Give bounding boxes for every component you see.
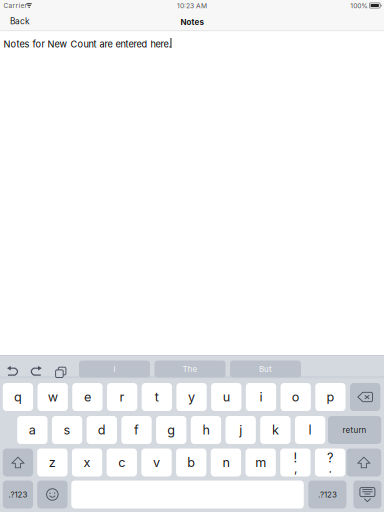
button[interactable]: k: [260, 416, 290, 444]
button[interactable]: Emoji: [37, 480, 67, 508]
staticText: e: [84, 389, 91, 405]
staticText: 100%: [350, 2, 368, 10]
staticText: s: [64, 422, 71, 438]
button[interactable]: [71, 480, 304, 508]
staticText: ?: [327, 450, 333, 466]
button[interactable]: v: [141, 448, 172, 476]
staticText: p: [326, 389, 334, 405]
button[interactable]: !: [280, 448, 310, 476]
button[interactable]: x: [72, 448, 102, 476]
staticText: Carrier: [3, 2, 26, 9]
button[interactable]: y: [176, 383, 207, 411]
button[interactable]: return: [328, 416, 381, 444]
button[interactable]: l: [295, 416, 325, 444]
button[interactable]: z: [37, 448, 67, 476]
button[interactable]: Hide Keyboard: [353, 480, 381, 508]
button[interactable]: j: [225, 416, 256, 444]
button[interactable]: Redo: [25, 362, 47, 380]
staticText: k: [272, 422, 279, 438]
staticText: The: [182, 364, 197, 374]
staticText: 10:23 AM: [177, 2, 207, 10]
button[interactable]: But: [230, 360, 301, 377]
staticText: c: [118, 455, 125, 470]
button[interactable]: Back: [0, 13, 40, 30]
staticText: f: [134, 422, 139, 438]
button[interactable]: Delete: [350, 383, 380, 411]
staticText: q: [14, 389, 22, 405]
staticText: Back: [10, 16, 30, 26]
button[interactable]: I: [79, 360, 150, 377]
button[interactable]: Shift: [3, 448, 33, 476]
button[interactable]: o: [281, 383, 311, 411]
staticText: v: [153, 455, 160, 470]
staticText: i: [259, 389, 262, 405]
button[interactable]: e: [72, 383, 102, 411]
button[interactable]: b: [176, 448, 206, 476]
staticText: But: [259, 364, 272, 374]
button[interactable]: .?123: [3, 480, 33, 508]
staticText: y: [188, 389, 195, 405]
button[interactable]: d: [87, 416, 117, 444]
staticText: g: [167, 422, 175, 438]
staticText: o: [292, 389, 300, 405]
button[interactable]: q: [3, 383, 33, 411]
button[interactable]: s: [52, 416, 82, 444]
button[interactable]: i: [246, 383, 276, 411]
button[interactable]: h: [191, 416, 221, 444]
button[interactable]: n: [211, 448, 241, 476]
button[interactable]: g: [156, 416, 186, 444]
staticText: j: [239, 422, 242, 438]
button[interactable]: The: [154, 360, 225, 377]
staticText: z: [49, 455, 56, 470]
button[interactable]: u: [211, 383, 241, 411]
staticText: r: [120, 389, 125, 405]
button[interactable]: m: [245, 448, 276, 476]
button[interactable]: Shift: [346, 448, 381, 476]
button[interactable]: ?: [315, 448, 345, 476]
staticText: a: [29, 422, 36, 438]
button[interactable]: a: [17, 416, 47, 444]
staticText: .: [329, 461, 332, 476]
staticText: x: [84, 455, 91, 470]
button[interactable]: Undo: [2, 362, 24, 380]
staticText: ,: [294, 461, 297, 476]
staticText: Notes: [180, 17, 203, 27]
staticText: .?123: [8, 490, 27, 499]
staticText: w: [48, 389, 58, 405]
staticText: u: [223, 389, 230, 405]
staticText: l: [309, 422, 312, 438]
staticText: b: [187, 455, 195, 470]
button[interactable]: .?123: [308, 480, 346, 508]
staticText: n: [222, 455, 229, 470]
staticText: h: [202, 422, 209, 438]
staticText: t: [155, 389, 159, 405]
button[interactable]: p: [315, 383, 346, 411]
staticText: m: [255, 455, 266, 470]
staticText: Notes for New Count are entered here.: [3, 38, 171, 50]
staticText: I: [113, 364, 115, 374]
button[interactable]: c: [107, 448, 137, 476]
staticText: d: [98, 422, 106, 438]
staticText: .?123: [318, 490, 337, 499]
staticText: !: [293, 450, 297, 466]
button[interactable]: w: [37, 383, 68, 411]
staticText: return: [343, 425, 367, 435]
button[interactable]: Copy: [48, 362, 70, 380]
button[interactable]: f: [121, 416, 152, 444]
button[interactable]: r: [107, 383, 137, 411]
button[interactable]: t: [142, 383, 172, 411]
